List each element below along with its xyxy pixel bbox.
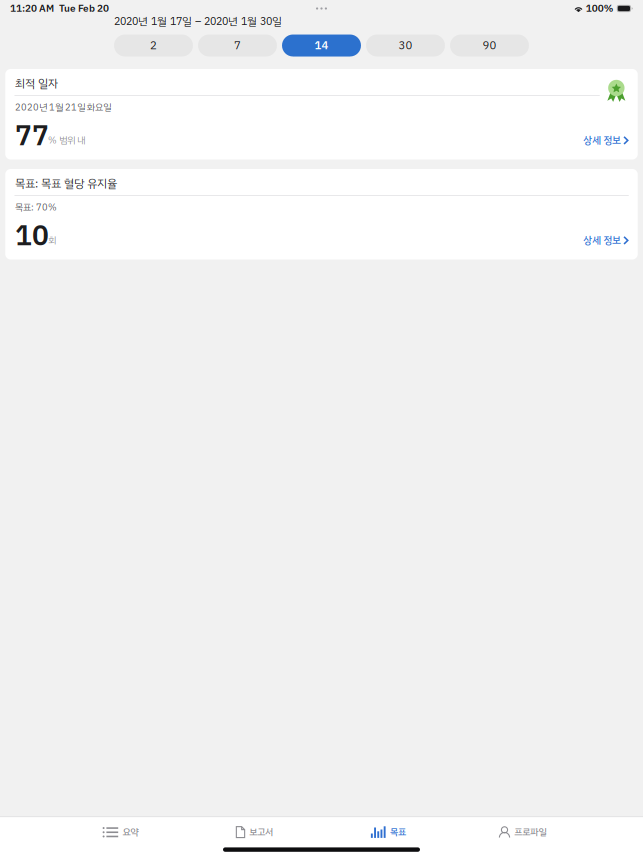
staticText: 목표 [390,825,406,839]
button[interactable]: 보고서 [187,817,321,847]
staticText: 보고서 [249,825,273,839]
button[interactable]: 90 [450,34,529,56]
button[interactable]: 상세 정보 [577,130,638,157]
staticText: 요약 [122,825,138,839]
staticText: 2 [150,37,157,54]
staticText: 11:20 AM [10,1,54,16]
staticText: 10 [15,215,49,257]
button[interactable]: 7 [198,34,277,56]
staticText: 2020년 1월 21일 화요일 [15,100,111,114]
button[interactable]: 상세 정보 [577,230,638,257]
button[interactable]: 목표 [321,817,455,847]
staticText: Tue Feb 20 [59,1,109,16]
staticText: 14 [314,37,328,54]
staticText: 최적 일자 [15,75,58,92]
staticText: 2020년 1월 17일 – 2020년 1월 30일 [114,13,282,29]
staticText: 30 [398,37,412,54]
staticText: 목표: 목표 혈당 유지율 [15,175,117,192]
button[interactable]: 30 [366,34,445,56]
staticText: 프로파일 [514,825,546,839]
staticText: 목표: 70% [15,200,57,214]
button[interactable]: 14 [282,34,361,56]
staticText: 7 [234,37,241,54]
button[interactable]: 프로파일 [455,817,589,847]
staticText: 77 [15,115,49,157]
button[interactable]: 2 [114,34,193,56]
button[interactable]: 요약 [53,817,187,847]
staticText: 90 [482,37,496,54]
staticText: % 범위 내 [48,133,85,147]
staticText: 상세 정보 [583,233,621,248]
staticText: 회 [48,233,56,247]
staticText: 100% [586,1,614,16]
staticText: 상세 정보 [583,133,621,148]
